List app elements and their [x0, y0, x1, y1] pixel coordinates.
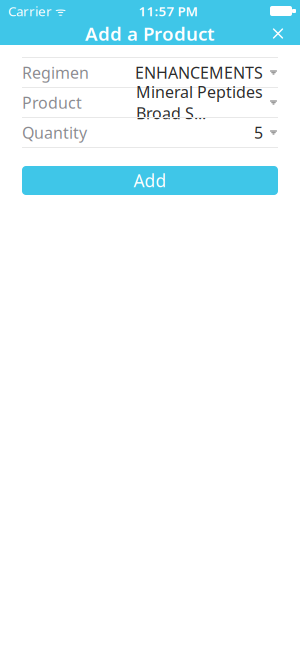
staticText: Quantity [22, 122, 87, 143]
staticText: Mineral Peptides Broad S... [136, 81, 263, 124]
button[interactable]: Regimen [0, 58, 300, 88]
staticText: 5 [254, 122, 263, 143]
staticText: Regimen [22, 62, 89, 83]
button[interactable]: Add [22, 166, 278, 195]
button[interactable]: Product [0, 88, 300, 118]
staticText: ᯤ [52, 3, 66, 19]
staticText: Product [22, 92, 82, 113]
button[interactable]: Close [261, 16, 295, 50]
staticText: Carrier [8, 2, 52, 20]
staticText: ENHANCEMENTS [135, 62, 263, 83]
staticText: 11:57 PM [138, 2, 197, 20]
staticText: Add a Product [85, 21, 215, 46]
staticText: Add [133, 169, 166, 192]
button[interactable]: Quantity [0, 118, 300, 148]
